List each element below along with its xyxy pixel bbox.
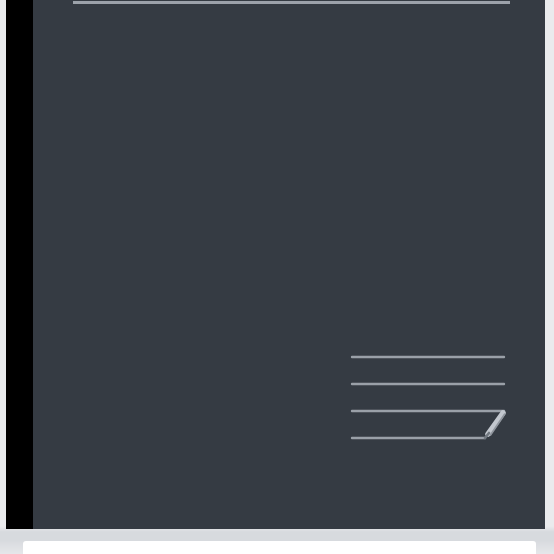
button[interactable]: Signature: [33, 0, 545, 529]
button[interactable]: Signature: [352, 345, 532, 450]
